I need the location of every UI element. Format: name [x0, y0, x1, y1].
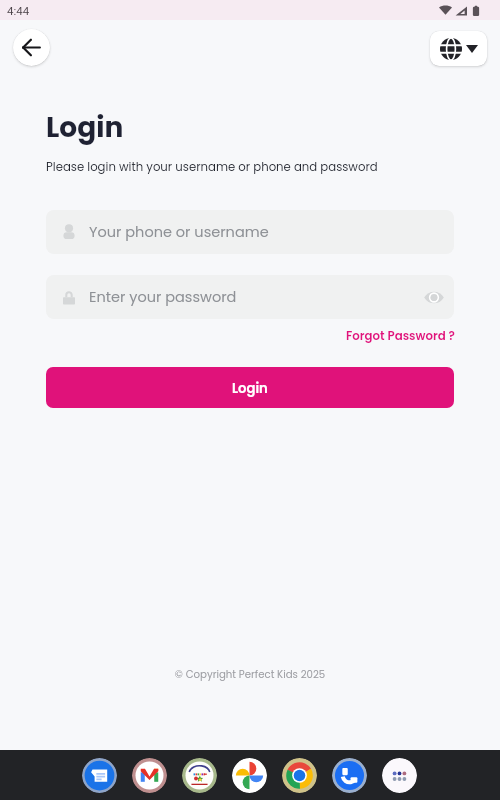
button[interactable]: Login [46, 367, 454, 408]
button[interactable]: Enter your password [46, 275, 454, 319]
staticText: Login [46, 108, 124, 147]
button[interactable]: App [232, 758, 267, 793]
staticText: Enter your password [89, 287, 237, 307]
button[interactable]: Forgot Password ? [346, 324, 455, 349]
button[interactable]: Your phone or username [46, 210, 454, 254]
staticText: 4:44 [7, 4, 30, 17]
button[interactable]: App [332, 758, 367, 793]
staticText: Login [232, 379, 268, 397]
staticText: © Copyright Perfect Kids 2025 [0, 667, 500, 681]
button[interactable]: App [282, 758, 317, 793]
button[interactable]: App [182, 758, 217, 793]
button[interactable]: Change language [430, 31, 487, 66]
button[interactable]: App [82, 758, 117, 793]
button[interactable]: App [382, 758, 417, 793]
button[interactable]: Show password [422, 285, 446, 309]
staticText: Forgot Password ? [346, 328, 455, 345]
staticText: Please login with your username or phone… [46, 159, 378, 175]
button[interactable]: Back [13, 29, 50, 66]
button[interactable]: App [132, 758, 167, 793]
staticText: Your phone or username [89, 222, 269, 242]
